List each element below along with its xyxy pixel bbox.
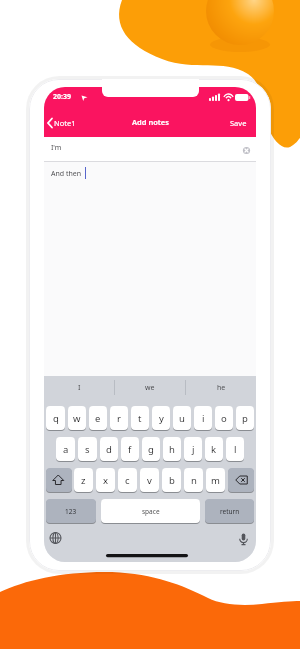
- button[interactable]: w: [68, 406, 86, 430]
- button[interactable]: d: [100, 437, 118, 461]
- staticText: d: [106, 443, 112, 456]
- button[interactable]: we: [115, 376, 185, 399]
- staticText: p: [242, 412, 248, 425]
- staticText: n: [191, 474, 197, 487]
- button[interactable]: n: [184, 468, 203, 492]
- staticText: f: [128, 443, 132, 456]
- staticText: c: [125, 474, 130, 487]
- button[interactable]: s: [78, 437, 97, 461]
- button[interactable]: return: [205, 499, 254, 523]
- staticText: m: [211, 474, 220, 487]
- button[interactable]: Note1: [54, 118, 76, 128]
- button[interactable]: [228, 468, 254, 492]
- staticText: z: [81, 474, 86, 487]
- staticText: o: [221, 412, 227, 425]
- staticText: 123: [65, 507, 77, 516]
- staticText: l: [234, 443, 237, 456]
- staticText: I'm: [51, 143, 62, 153]
- staticText: 20:39: [53, 92, 71, 102]
- button[interactable]: u: [173, 406, 191, 430]
- staticText: y: [159, 412, 164, 425]
- button[interactable]: i: [194, 406, 212, 430]
- staticText: a: [63, 443, 69, 456]
- staticText: w: [73, 412, 81, 425]
- staticText: r: [117, 412, 121, 425]
- button[interactable]: v: [140, 468, 159, 492]
- button[interactable]: 123: [46, 499, 96, 523]
- staticText: b: [169, 474, 175, 487]
- button[interactable]: q: [46, 406, 65, 430]
- staticText: space: [142, 507, 160, 516]
- staticText: j: [192, 443, 195, 456]
- button[interactable]: k: [205, 437, 223, 461]
- button[interactable]: y: [152, 406, 170, 430]
- button[interactable]: t: [131, 406, 149, 430]
- button[interactable]: z: [74, 468, 93, 492]
- staticText: h: [169, 443, 175, 456]
- staticText: g: [148, 443, 154, 456]
- button[interactable]: a: [56, 437, 75, 461]
- button[interactable]: I: [44, 376, 114, 399]
- staticText: And then: [51, 169, 82, 179]
- button[interactable]: r: [110, 406, 128, 430]
- button[interactable]: [46, 468, 72, 492]
- button[interactable]: he: [186, 376, 256, 399]
- staticText: v: [147, 474, 152, 487]
- staticText: e: [95, 412, 101, 425]
- button[interactable]: e: [89, 406, 107, 430]
- staticText: he: [217, 383, 226, 393]
- staticText: I: [78, 383, 81, 393]
- staticText: s: [85, 443, 90, 456]
- button[interactable]: g: [142, 437, 160, 461]
- staticText: we: [145, 383, 155, 393]
- button[interactable]: h: [163, 437, 181, 461]
- staticText: i: [202, 412, 205, 425]
- staticText: k: [211, 443, 217, 456]
- staticText: x: [103, 474, 109, 487]
- staticText: Add notes: [132, 117, 169, 127]
- staticText: t: [138, 412, 142, 425]
- button[interactable]: p: [236, 406, 254, 430]
- button[interactable]: Save: [230, 118, 247, 128]
- button[interactable]: x: [96, 468, 115, 492]
- button[interactable]: o: [215, 406, 233, 430]
- button[interactable]: l: [226, 437, 244, 461]
- button[interactable]: I'm: [44, 137, 256, 161]
- button[interactable]: c: [118, 468, 137, 492]
- button[interactable]: f: [121, 437, 139, 461]
- button[interactable]: space: [101, 499, 200, 523]
- staticText: return: [220, 507, 240, 516]
- staticText: u: [179, 412, 185, 425]
- button[interactable]: b: [162, 468, 181, 492]
- button[interactable]: m: [206, 468, 225, 492]
- button[interactable]: j: [184, 437, 202, 461]
- staticText: q: [53, 412, 59, 425]
